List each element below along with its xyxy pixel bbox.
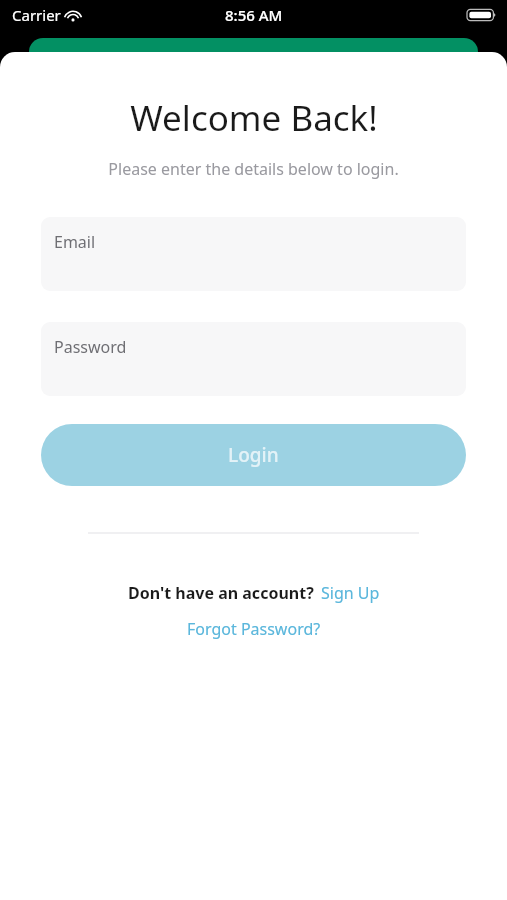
- staticText: Password: [54, 336, 127, 358]
- button[interactable]: Password: [41, 322, 466, 396]
- staticText: 8:56 AM: [225, 5, 283, 25]
- staticText: Carrier: [12, 5, 61, 25]
- staticText: Login: [228, 442, 279, 468]
- other: Wi-Fi signal: [64, 8, 82, 22]
- other: Battery full: [467, 8, 497, 22]
- button[interactable]: Sign Up: [321, 582, 380, 604]
- staticText: Welcome Back!: [130, 94, 378, 142]
- staticText: Email: [54, 231, 96, 253]
- staticText: Please enter the details below to login.: [108, 158, 399, 180]
- staticText: Sign Up: [321, 582, 380, 604]
- button[interactable]: Forgot Password?: [187, 618, 321, 640]
- staticText: Don't have an account?: [128, 582, 314, 604]
- button[interactable]: Login: [41, 424, 466, 486]
- button[interactable]: Email: [41, 217, 466, 291]
- staticText: Forgot Password?: [187, 618, 321, 640]
